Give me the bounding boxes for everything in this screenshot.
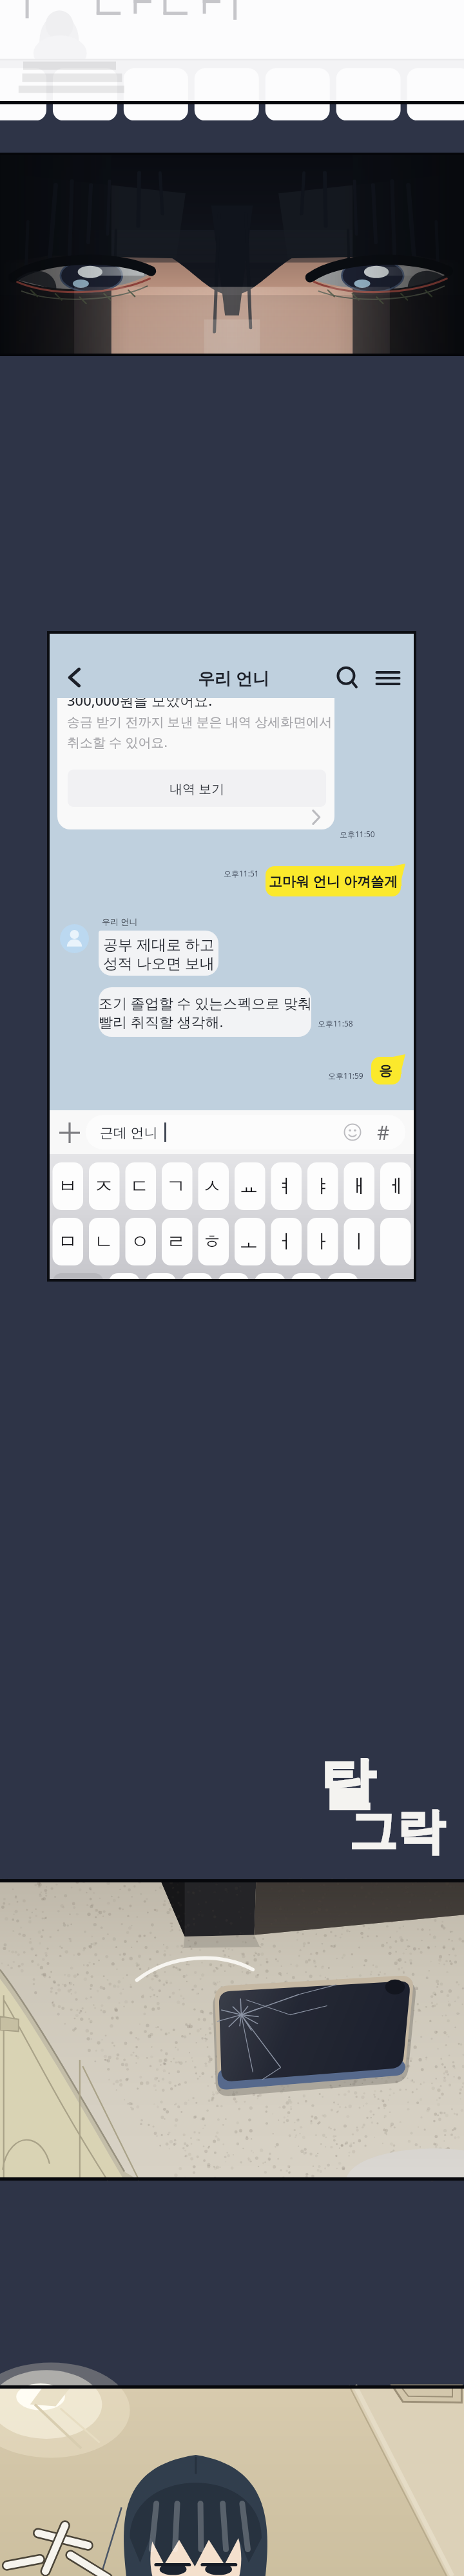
staticText: 오후11:59 xyxy=(328,1070,363,1081)
staticText: 고마워 언니 아껴쓸게 xyxy=(269,872,398,891)
staticText: ㅑ xyxy=(313,1174,332,1198)
staticText: ㅣ xyxy=(349,1229,369,1254)
staticText: ㅈ xyxy=(94,1174,113,1198)
button[interactable]: ㅐ xyxy=(340,1162,377,1210)
button[interactable]: ㄱ xyxy=(158,1162,194,1210)
staticText: ㅂ xyxy=(58,1174,77,1198)
staticText: ㄷ xyxy=(130,1174,150,1198)
staticText: ㅇ xyxy=(130,1229,150,1254)
button[interactable]: 근데 언니 xyxy=(86,1115,405,1150)
button[interactable]: 고마워 언니 아껴쓸게 xyxy=(266,866,405,896)
staticText: ㅕ xyxy=(276,1174,295,1198)
staticText: 공부 제대로 하고 성적 나오면 보내 xyxy=(103,934,215,973)
button[interactable]: Menu xyxy=(376,666,400,690)
button[interactable]: ㄴ xyxy=(86,1218,122,1265)
button[interactable]: ㅈ xyxy=(86,1162,122,1210)
staticText: 내역 보기 xyxy=(169,780,225,797)
staticText: 그락 xyxy=(349,1802,445,1862)
staticText: ㅎ xyxy=(202,1229,222,1254)
staticText: ㅐ xyxy=(349,1174,369,1198)
button[interactable]: ㅏ xyxy=(304,1218,340,1265)
staticText: 오후11:58 xyxy=(318,1018,353,1028)
staticText: ㅓ xyxy=(276,1229,295,1254)
button[interactable]: 내역 보기 xyxy=(68,770,326,807)
button[interactable]: ㅇ xyxy=(122,1218,158,1265)
button[interactable]: ㅁ xyxy=(50,1218,86,1265)
staticText: 근데 언니 xyxy=(100,1123,158,1142)
staticText: ㄱ xyxy=(166,1174,186,1198)
button[interactable]: ㅓ xyxy=(267,1218,304,1265)
button[interactable]: 응 xyxy=(371,1057,405,1084)
staticText: ㅏ xyxy=(313,1229,332,1254)
staticText: 조기 졸업할 수 있는스펙으로 맞춰 빨리 취직할 생각해. xyxy=(99,993,311,1032)
button[interactable]: ㄹ xyxy=(158,1218,194,1265)
staticText: 우리 언니 xyxy=(198,667,269,690)
button[interactable]: ㅛ xyxy=(230,1162,267,1210)
staticText: ㄹ xyxy=(166,1229,186,1254)
button[interactable]: Add attachment xyxy=(59,1122,81,1144)
button[interactable]: Search xyxy=(336,666,360,690)
button[interactable]: ㅔ xyxy=(377,1162,414,1210)
button[interactable]: ㅎ xyxy=(194,1218,230,1265)
staticText: ㅛ xyxy=(239,1174,258,1198)
staticText: ㅁ xyxy=(58,1229,77,1254)
button[interactable]: 조기 졸업할 수 있는스펙으로 맞춰 빨리 취직할 생각해. xyxy=(99,987,311,1037)
staticText: 응 xyxy=(379,1063,392,1079)
staticText: 300,000원을 모았어요. xyxy=(67,698,213,710)
staticText: ㄴ xyxy=(94,1229,113,1254)
button[interactable]: ㅅ xyxy=(194,1162,230,1210)
staticText: 송금 받기 전까지 보낸 분은 내역 상세화면에서 취소할 수 있어요. xyxy=(67,713,333,750)
button[interactable]: Back xyxy=(62,665,86,690)
button[interactable]: 300,000원을 모았어요. xyxy=(57,698,334,829)
button[interactable]: ㅗ xyxy=(230,1218,267,1265)
button[interactable]: ㅑ xyxy=(304,1162,340,1210)
button[interactable]: ㅣ xyxy=(340,1218,377,1265)
staticText: 탈 xyxy=(320,1749,375,1819)
button[interactable]: ㅂ xyxy=(50,1162,86,1210)
staticText: ㅗ xyxy=(239,1229,258,1254)
button[interactable]: ㄷ xyxy=(122,1162,158,1210)
staticText: # xyxy=(377,1119,390,1146)
button[interactable]: 공부 제대로 하고 성적 나오면 보내 xyxy=(99,931,218,976)
staticText: ㅔ xyxy=(386,1174,405,1198)
button[interactable]: ㅕ xyxy=(267,1162,304,1210)
staticText: ㅅ xyxy=(202,1174,222,1198)
staticText: 오후11:50 xyxy=(340,829,375,839)
staticText: 우리 언니 xyxy=(102,916,138,927)
staticText: 오후11:51 xyxy=(224,868,259,878)
